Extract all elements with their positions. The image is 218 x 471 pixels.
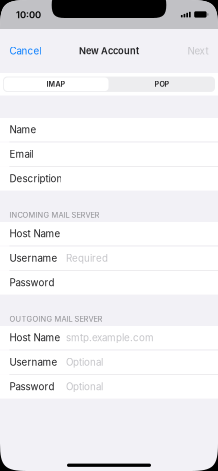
staticText: Name [9,124,36,136]
staticText: Username [9,252,57,264]
button[interactable]: Username [0,246,218,270]
staticText: Optional [66,356,103,368]
staticText: Description [9,173,62,185]
staticText: POP [154,80,169,88]
button[interactable]: Password [0,375,218,399]
staticText: Host Name [9,332,60,344]
staticText: Password [9,381,54,393]
staticText: Optional [66,381,103,393]
staticText: smtp.example.com [66,332,154,344]
button[interactable]: Description [0,167,218,191]
button[interactable]: Host Name [0,222,218,246]
staticText: Host Name [9,228,60,240]
staticText: IMAP [46,80,65,88]
button[interactable]: Password [0,271,218,295]
staticText: Required [66,252,108,264]
button[interactable]: Name [0,118,218,142]
button[interactable]: Cancel [0,29,49,73]
staticText: OUTGOING MAIL SERVER [9,314,102,323]
staticText: Password [9,277,54,289]
button[interactable]: Next [180,29,218,73]
staticText: New Account [79,45,139,56]
button[interactable]: Username [0,350,218,374]
staticText: Next [188,45,209,57]
staticText: Cancel [9,45,41,57]
button[interactable]: Email [0,142,218,166]
staticText: Email [9,148,33,160]
staticText: 10:00 [16,9,41,21]
staticText: INCOMING MAIL SERVER [9,211,99,220]
staticText: Username [9,356,57,368]
button[interactable]: IMAP [3,76,109,92]
button[interactable]: Host Name [0,326,218,350]
button[interactable]: POP [109,76,215,92]
